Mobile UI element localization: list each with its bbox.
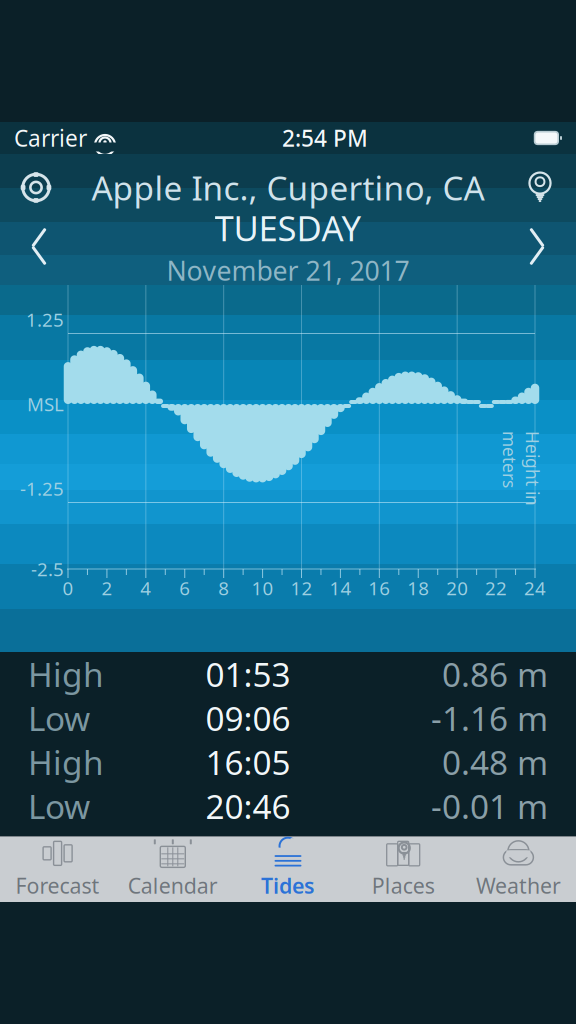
staticText: 6	[179, 576, 190, 600]
button[interactable]: Calendar	[115, 836, 230, 901]
staticText: Tides	[261, 871, 315, 900]
staticText: Places	[372, 871, 435, 900]
button[interactable]: Next day	[504, 216, 570, 276]
staticText: Carrier	[14, 123, 87, 153]
staticText: -1.25	[20, 476, 64, 501]
staticText: 4	[140, 576, 151, 600]
staticText: 22	[485, 576, 507, 600]
staticText: 16:05	[205, 740, 290, 784]
staticText: Weather	[476, 871, 561, 900]
staticText: MSL	[27, 392, 64, 416]
staticText: -1.16 m	[431, 696, 548, 740]
staticText: 0	[62, 576, 73, 600]
staticText: Forecast	[16, 871, 100, 900]
staticText: -0.01 m	[431, 784, 548, 828]
staticText: 12	[290, 576, 312, 600]
staticText: 18	[407, 576, 429, 600]
staticText: 2:54 PM	[282, 123, 368, 153]
button[interactable]: Places	[346, 836, 461, 901]
staticText: Calendar	[128, 871, 218, 900]
button[interactable]: Tides	[230, 836, 346, 901]
button[interactable]: Previous day	[6, 216, 72, 276]
staticText: 20:46	[205, 784, 290, 828]
staticText: High	[28, 740, 104, 784]
staticText: Low	[28, 696, 90, 740]
staticText: 20	[446, 576, 468, 600]
staticText: 2.5	[37, 223, 64, 247]
staticText: 01:53	[205, 652, 290, 696]
button[interactable]: Location	[512, 164, 568, 210]
staticText: 0.86 m	[442, 652, 548, 696]
staticText: 2	[101, 576, 112, 600]
staticText: 09:06	[205, 696, 290, 740]
staticText: 1.25	[26, 307, 64, 332]
staticText: 24	[524, 576, 546, 600]
staticText: TUESDAY	[214, 205, 361, 251]
staticText: Apple Inc., Cupertino, CA	[91, 165, 484, 210]
staticText: 8	[218, 576, 229, 600]
staticText: November 21, 2017	[166, 253, 409, 288]
button[interactable]: Settings	[8, 164, 64, 210]
staticText: Low	[28, 784, 90, 828]
staticText: 10	[252, 576, 274, 600]
staticText: 16	[368, 576, 390, 600]
staticText: Height in meters	[483, 445, 558, 491]
staticText: -2.5	[31, 557, 64, 581]
button[interactable]: Forecast	[0, 836, 115, 901]
staticText: High	[28, 652, 104, 696]
button[interactable]: Weather	[461, 836, 576, 901]
staticText: 0.48 m	[442, 740, 548, 784]
staticText: 14	[329, 576, 351, 600]
